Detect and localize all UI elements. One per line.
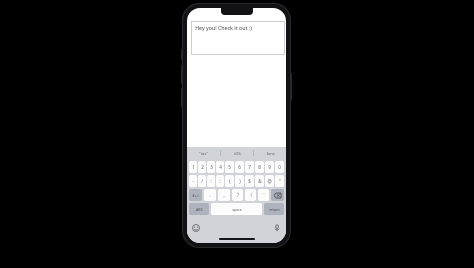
button[interactable]: #+= [189, 189, 202, 201]
button[interactable]: " [275, 175, 284, 187]
button[interactable]: ? [232, 189, 243, 201]
staticText: 5 [228, 164, 231, 170]
button[interactable]: ! [245, 189, 256, 201]
staticText: ? [237, 192, 239, 198]
staticText: & [258, 178, 262, 184]
staticText: $ [248, 178, 251, 184]
button[interactable]: space [211, 203, 262, 215]
staticText: ' [263, 192, 265, 198]
button[interactable]: ( [225, 175, 234, 187]
staticText: " [279, 178, 281, 184]
button[interactable]: 2 [198, 161, 206, 173]
staticText: / [201, 178, 203, 184]
button[interactable]: Delete [271, 189, 284, 201]
button[interactable]: iOS [221, 147, 253, 159]
button[interactable]: , [218, 189, 230, 201]
staticText: . [209, 192, 211, 198]
staticText: 6 [238, 164, 241, 170]
staticText: Ions [266, 151, 275, 156]
staticText: - [192, 178, 194, 184]
staticText: 4 [219, 164, 222, 170]
staticText: 7 [248, 164, 251, 170]
staticText: "ios" [199, 151, 208, 156]
button[interactable]: ' [258, 189, 269, 201]
button[interactable]: ABC [189, 203, 209, 215]
button[interactable]: : [207, 175, 215, 187]
staticText: 9 [268, 164, 271, 170]
button[interactable]: $ [245, 175, 254, 187]
button[interactable]: 0 [275, 161, 284, 173]
staticText: : [210, 178, 212, 184]
staticText: 0 [278, 164, 281, 170]
staticText: ) [239, 178, 241, 184]
button[interactable]: 6 [235, 161, 244, 173]
button[interactable]: Hey you! Check it out :) [191, 21, 285, 55]
staticText: 1 [192, 164, 195, 170]
staticText: space [232, 207, 242, 212]
button[interactable]: / [198, 175, 206, 187]
button[interactable]: return [264, 203, 284, 215]
button[interactable]: "ios" [187, 147, 220, 159]
button[interactable]: . [204, 189, 216, 201]
staticText: ( [229, 178, 231, 184]
staticText: ABC [196, 207, 203, 212]
button[interactable]: Emoji [190, 222, 201, 233]
staticText: ; [219, 178, 221, 184]
button[interactable]: 3 [207, 161, 215, 173]
button[interactable]: 4 [216, 161, 224, 173]
button[interactable]: 8 [255, 161, 264, 173]
staticText: 2 [201, 164, 204, 170]
staticText: Hey you! Check it out :) [195, 24, 252, 31]
button[interactable]: 1 [189, 161, 197, 173]
button[interactable]: Dictate [271, 222, 282, 233]
button[interactable]: ; [216, 175, 224, 187]
button[interactable]: - [189, 175, 197, 187]
button[interactable]: @ [265, 175, 274, 187]
button[interactable]: 7 [245, 161, 254, 173]
button[interactable]: & [255, 175, 264, 187]
button[interactable]: 5 [225, 161, 234, 173]
button[interactable]: 9 [265, 161, 274, 173]
staticText: #+= [192, 193, 199, 198]
staticText: 8 [258, 164, 261, 170]
staticText: , [223, 192, 225, 198]
button[interactable]: ) [235, 175, 244, 187]
staticText: @ [267, 178, 272, 184]
staticText: 3 [210, 164, 213, 170]
staticText: iOS [234, 151, 241, 156]
button[interactable]: Ions [254, 147, 286, 159]
staticText: ! [250, 192, 252, 198]
staticText: return [269, 207, 280, 212]
